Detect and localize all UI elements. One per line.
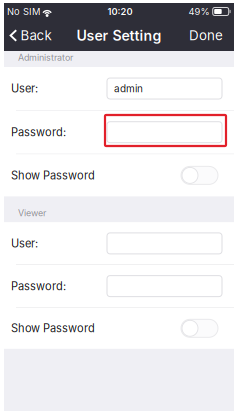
staticText: User Setting [76, 27, 161, 44]
staticText: Back [20, 27, 51, 43]
staticText: Password: [11, 125, 66, 139]
staticText: 49% [188, 6, 209, 17]
staticText: No SIM [7, 6, 40, 17]
button[interactable]: Back [4, 20, 58, 51]
staticText: Show Password [11, 322, 95, 335]
staticText: Viewer [18, 208, 46, 218]
button[interactable]: Show Password [4, 308, 234, 349]
staticText: 10:20 [108, 6, 133, 17]
staticText: User: [11, 237, 38, 250]
staticText: Password: [11, 279, 66, 293]
button[interactable]: Show Password [4, 154, 234, 196]
staticText: User: [11, 82, 38, 95]
button[interactable]: Done [182, 20, 234, 51]
staticText: Show Password [11, 169, 95, 182]
staticText: Administrator [18, 52, 73, 63]
staticText: admin [114, 82, 143, 95]
staticText: Done [189, 27, 223, 43]
